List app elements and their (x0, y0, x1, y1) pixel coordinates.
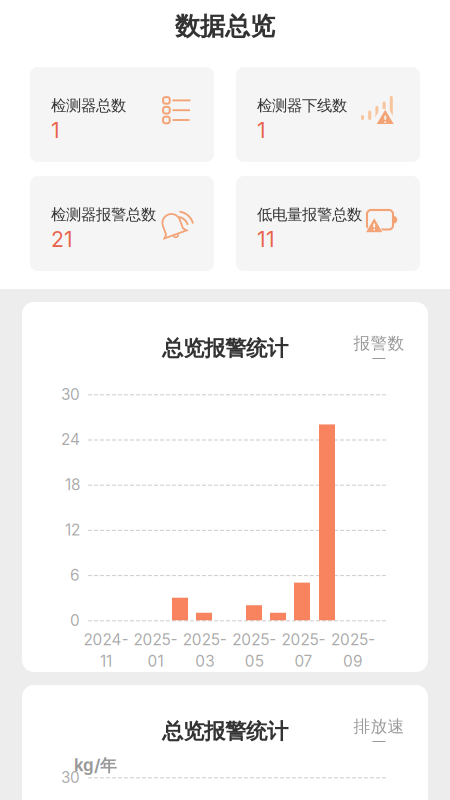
staticText: 检测器下线数 (257, 96, 347, 115)
staticText: 1 (257, 117, 266, 143)
staticText: 03 (195, 652, 214, 670)
staticText: 低电量报警总数 (257, 205, 362, 224)
staticText: 2025- (183, 630, 227, 649)
staticText: 11 (100, 652, 112, 670)
staticText: 总览报警统计 (162, 335, 288, 362)
staticText: 1 (51, 117, 60, 143)
staticText: 24 (61, 430, 80, 449)
staticText: 2024- (83, 630, 128, 649)
staticText: 排放速 (353, 716, 404, 737)
staticText: 2025- (133, 630, 177, 649)
staticText: 21 (51, 226, 73, 252)
staticText: 30 (61, 768, 80, 787)
button[interactable]: 检测器总数 (30, 67, 214, 162)
staticText: 检测器总数 (51, 96, 126, 115)
staticText: 05 (245, 652, 264, 670)
staticText: 11 (257, 226, 275, 252)
staticText: 2025- (282, 630, 326, 649)
staticText: 报警数 (353, 333, 404, 354)
staticText: 30 (61, 385, 80, 404)
button[interactable]: 检测器下线数 (236, 67, 420, 162)
staticText: 总览报警统计 (162, 718, 288, 745)
staticText: 09 (343, 652, 363, 670)
button[interactable]: 低电量报警总数 (236, 176, 420, 271)
staticText: 6 (70, 566, 80, 584)
staticText: 12 (65, 521, 80, 539)
staticText: 2025- (331, 630, 375, 649)
staticText: 0 (70, 611, 80, 630)
staticText: 检测器报警总数 (51, 205, 156, 224)
staticText: 01 (147, 652, 163, 670)
staticText: 数据总览 (175, 11, 275, 42)
button[interactable]: 检测器报警总数 (30, 176, 214, 271)
staticText: 07 (295, 652, 313, 670)
staticText: kg/年 (74, 755, 117, 776)
staticText: 18 (65, 475, 80, 494)
staticText: 2025- (232, 630, 276, 649)
